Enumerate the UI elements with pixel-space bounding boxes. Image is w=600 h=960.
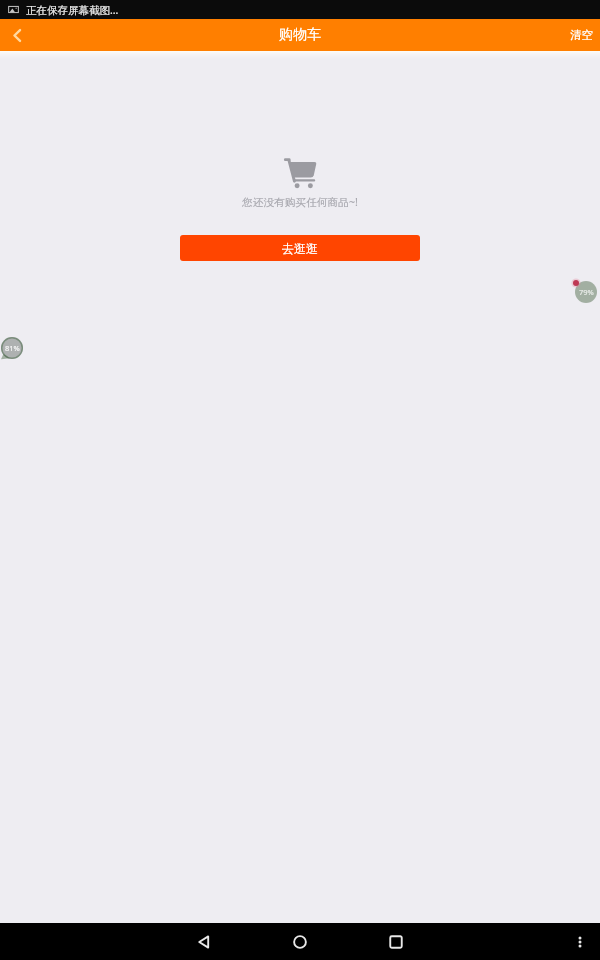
button[interactable]: 81% — [1, 337, 23, 359]
button[interactable]: 79% — [575, 281, 597, 303]
staticText: 79% — [579, 287, 594, 297]
button[interactable]: 清空 — [558, 19, 600, 51]
staticText: 正在保存屏幕截图… — [26, 3, 119, 17]
button[interactable]: Back — [0, 19, 36, 51]
staticText: 购物车 — [279, 26, 321, 44]
button[interactable]: More options — [560, 923, 600, 960]
staticText: 您还没有购买任何商品~! — [242, 195, 358, 210]
button[interactable]: Home — [276, 923, 324, 960]
button[interactable]: Recents — [372, 923, 420, 960]
staticText: 81% — [5, 343, 20, 353]
button[interactable]: Back — [180, 923, 228, 960]
button[interactable]: 去逛逛 — [180, 235, 420, 261]
staticText: 去逛逛 — [282, 241, 318, 256]
staticText: 清空 — [570, 28, 593, 42]
